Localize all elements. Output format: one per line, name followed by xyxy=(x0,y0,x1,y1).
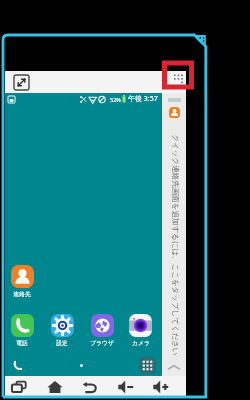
button[interactable]: Toggle full screen xyxy=(14,75,29,90)
staticText: 52% xyxy=(110,96,121,103)
button[interactable]: ブラウザ xyxy=(82,314,122,346)
staticText: クイック連絡先画面を追加するには、ここをタップしてください xyxy=(170,134,179,356)
staticText: ブラウザ xyxy=(90,339,114,346)
staticText: カメラ xyxy=(132,339,150,346)
staticText: 設定 xyxy=(56,339,68,346)
button[interactable]: Phone xyxy=(11,359,24,372)
button[interactable]: Back xyxy=(79,376,101,398)
staticText: 電話 xyxy=(16,339,28,346)
button[interactable]: 電話 xyxy=(2,314,42,346)
button[interactable]: カメラ xyxy=(122,314,159,346)
button[interactable]: 連絡先 xyxy=(2,265,42,297)
staticText: 午後 3:57 xyxy=(128,94,158,104)
button[interactable]: Volume down xyxy=(115,376,137,398)
staticText: 連絡先 xyxy=(13,290,31,297)
button[interactable]: Home xyxy=(44,376,66,398)
button[interactable]: 設定 xyxy=(42,314,82,346)
button[interactable]: Apps xyxy=(139,357,156,374)
button[interactable]: Recents xyxy=(8,376,30,398)
button[interactable]: Volume up xyxy=(150,376,172,398)
